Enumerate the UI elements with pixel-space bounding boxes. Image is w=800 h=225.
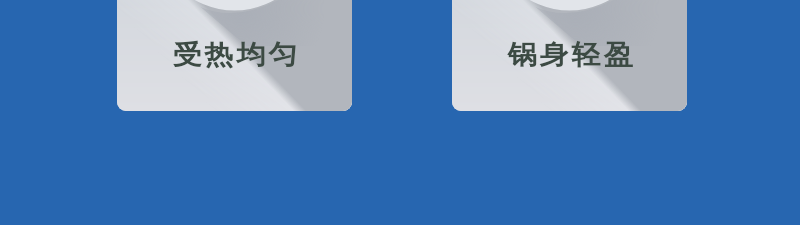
staticText: 锅身轻盈 [454, 38, 687, 72]
button[interactable]: 锅身轻盈 [452, 0, 687, 111]
staticText: 受热均匀 [119, 38, 352, 72]
button[interactable]: 受热均匀 [117, 0, 352, 111]
